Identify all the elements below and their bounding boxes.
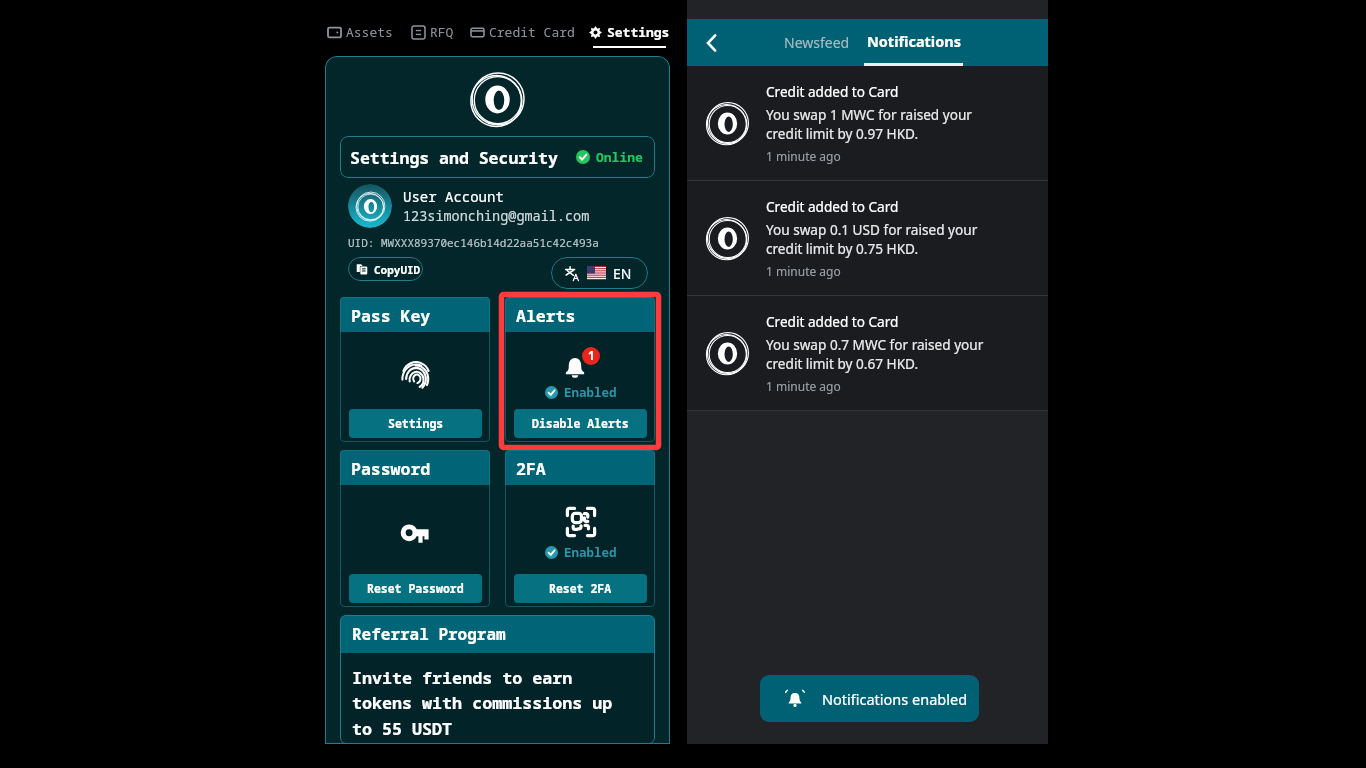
- staticText: Settings and Security: [350, 146, 558, 168]
- button[interactable]: Disable Alerts: [514, 409, 647, 438]
- staticText: Alerts: [516, 304, 576, 326]
- button[interactable]: Settings: [589, 18, 670, 48]
- staticText: Invite friends to earn tokens with commi…: [352, 666, 613, 740]
- staticText: RFQ: [430, 23, 454, 41]
- staticText: credit limit by 0.67 HKD.: [766, 354, 919, 373]
- button[interactable]: Password: [340, 450, 490, 607]
- staticText: Password: [351, 457, 431, 479]
- button[interactable]: Notifications: [864, 19, 963, 66]
- staticText: credit limit by 0.75 HKD.: [766, 239, 919, 258]
- staticText: 1 minute ago: [766, 148, 841, 164]
- button[interactable]: Reset Password: [349, 574, 482, 603]
- button[interactable]: Settings and Security: [340, 136, 655, 178]
- staticText: Notifications enabled: [822, 689, 968, 709]
- staticText: 1 minute ago: [766, 263, 841, 279]
- staticText: Settings: [388, 416, 444, 432]
- staticText: Referral Program: [352, 623, 506, 645]
- staticText: Settings: [607, 23, 670, 41]
- staticText: Reset Password: [367, 581, 464, 597]
- staticText: credit limit by 0.97 HKD.: [766, 124, 919, 143]
- staticText: EN: [613, 264, 632, 283]
- button[interactable]: Alerts: [505, 297, 655, 442]
- button[interactable]: Credit Card: [469, 18, 576, 48]
- staticText: User Account: [403, 187, 504, 206]
- staticText: 123simonching@gmail.com: [403, 207, 590, 225]
- staticText: Pass Key: [351, 304, 431, 326]
- staticText: Reset 2FA: [549, 581, 612, 597]
- button[interactable]: RFQ: [410, 18, 455, 48]
- staticText: Newsfeed: [784, 33, 850, 52]
- button[interactable]: 2FA: [505, 450, 655, 607]
- staticText: UID: MWXXX89370ec146b14d22aa51c42c493a: [348, 235, 599, 250]
- button[interactable]: Notifications enabled: [760, 675, 979, 722]
- staticText: 1: [588, 348, 595, 364]
- button[interactable]: EN: [551, 257, 648, 289]
- staticText: Online: [596, 148, 643, 166]
- staticText: 2FA: [516, 457, 546, 479]
- staticText: Credit added to Card: [766, 312, 899, 331]
- button[interactable]: Reset 2FA: [514, 574, 647, 603]
- button[interactable]: Credit added to Card: [687, 181, 1048, 295]
- staticText: 1 minute ago: [766, 378, 841, 394]
- button[interactable]: Settings: [349, 409, 482, 438]
- staticText: You swap 1 MWC for raised your: [766, 105, 972, 124]
- staticText: You swap 0.1 USD for raised your: [766, 220, 978, 239]
- button[interactable]: CopyUID: [348, 257, 423, 281]
- button[interactable]: Assets: [328, 18, 393, 48]
- button[interactable]: Newsfeed: [783, 19, 851, 66]
- button[interactable]: Back: [693, 24, 731, 62]
- staticText: Enabled: [564, 544, 617, 561]
- staticText: CopyUID: [374, 262, 421, 277]
- staticText: Credit Card: [489, 23, 575, 41]
- button[interactable]: Pass Key: [340, 297, 490, 442]
- staticText: Disable Alerts: [532, 416, 629, 432]
- staticText: Enabled: [564, 384, 617, 401]
- staticText: Credit added to Card: [766, 197, 899, 216]
- staticText: You swap 0.7 MWC for raised your: [766, 335, 984, 354]
- staticText: Credit added to Card: [766, 82, 899, 101]
- staticText: Notifications: [867, 31, 961, 51]
- staticText: Assets: [346, 23, 393, 41]
- button[interactable]: Credit added to Card: [687, 296, 1048, 410]
- button[interactable]: Credit added to Card: [687, 66, 1048, 180]
